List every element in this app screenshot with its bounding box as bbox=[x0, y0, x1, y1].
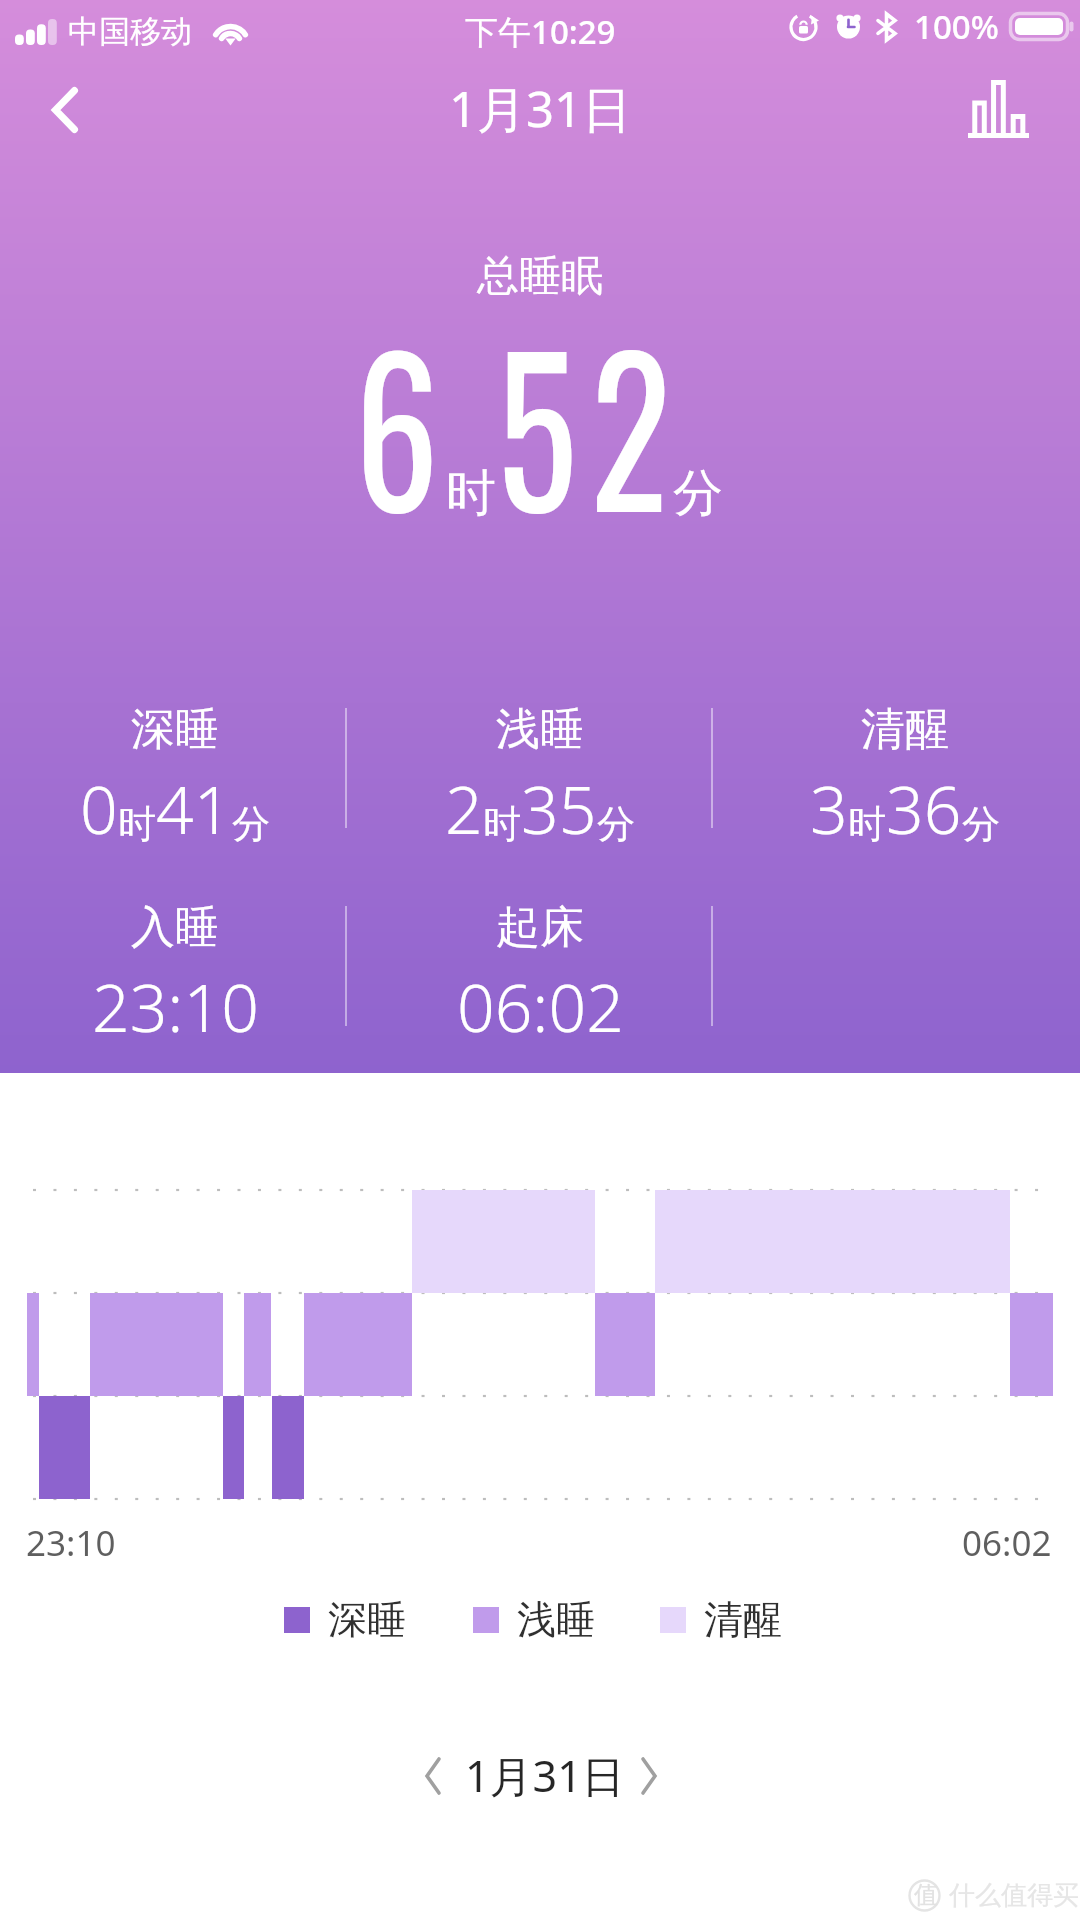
staticText: 36 bbox=[886, 763, 962, 853]
staticText: 深睡 bbox=[131, 702, 219, 757]
staticText: 1月31日 bbox=[449, 75, 632, 142]
staticText: 什么值得买 bbox=[949, 1879, 1079, 1912]
button[interactable]: Statistics bbox=[970, 62, 1080, 172]
staticText: 总睡眠 bbox=[477, 250, 603, 303]
button[interactable]: Previous day bbox=[397, 1740, 469, 1812]
staticText: 06:02 bbox=[962, 1519, 1052, 1567]
staticText: 浅睡 bbox=[517, 1595, 595, 1644]
button[interactable]: 浅睡 bbox=[473, 1595, 595, 1644]
staticText: 0 bbox=[80, 763, 118, 853]
staticText: 100% bbox=[914, 4, 999, 49]
staticText: 值 bbox=[914, 1880, 938, 1910]
button[interactable]: Back bbox=[0, 62, 120, 172]
staticText: 6 bbox=[354, 277, 439, 537]
staticText: 06:02 bbox=[457, 961, 624, 1051]
button[interactable]: 清醒 bbox=[660, 1595, 782, 1644]
staticText: 23:10 bbox=[92, 961, 259, 1051]
staticText: 时 bbox=[118, 800, 156, 848]
staticText: 时 bbox=[483, 800, 521, 848]
staticText: 23:10 bbox=[26, 1519, 116, 1567]
staticText: 深睡 bbox=[328, 1595, 406, 1644]
staticText: 3 bbox=[810, 763, 848, 853]
staticText: 下午10:29 bbox=[465, 9, 616, 54]
staticText: 分 bbox=[962, 800, 1000, 848]
staticText: 1月31日 bbox=[465, 1746, 625, 1805]
staticText: 浅睡 bbox=[496, 702, 584, 757]
button[interactable]: 深睡 bbox=[284, 1595, 406, 1644]
staticText: 清醒 bbox=[861, 702, 949, 757]
staticText: 起床 bbox=[496, 900, 584, 955]
staticText: 2 bbox=[445, 763, 483, 853]
staticText: 分 bbox=[597, 800, 635, 848]
button[interactable]: Next day bbox=[613, 1740, 685, 1812]
staticText: 清醒 bbox=[704, 1595, 782, 1644]
staticText: 时 bbox=[446, 462, 496, 525]
staticText: 35 bbox=[521, 763, 597, 853]
staticText: 时 bbox=[848, 800, 886, 848]
staticText: 分 bbox=[673, 462, 723, 525]
staticText: 2 bbox=[590, 277, 671, 537]
staticText: 分 bbox=[232, 800, 270, 848]
staticText: 41 bbox=[156, 763, 232, 853]
staticText: 入睡 bbox=[131, 900, 219, 955]
staticText: 中国移动 bbox=[68, 12, 192, 51]
staticText: 5 bbox=[497, 277, 577, 537]
